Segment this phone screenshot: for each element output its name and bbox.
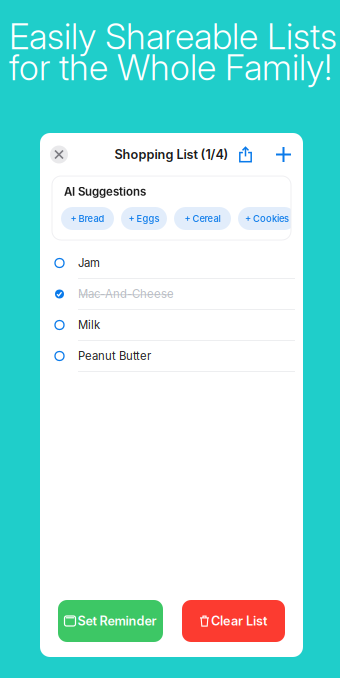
staticText: Jam [78, 256, 100, 270]
staticText: Set Reminder [77, 613, 156, 629]
staticText: for the Whole Family! [9, 46, 332, 89]
staticText: Milk [78, 318, 100, 332]
staticText: Clear List [211, 613, 267, 629]
staticText: Mac-And-Cheese [78, 287, 174, 301]
button[interactable]: Peanut Butter [40, 341, 303, 372]
button[interactable]: Add item [276, 147, 291, 162]
button[interactable]: + Cookies [238, 207, 296, 230]
staticText: + Cereal [184, 213, 220, 224]
button[interactable]: Jam [40, 248, 303, 279]
staticText: Easily Shareable Lists [9, 15, 337, 58]
button[interactable]: Share [239, 146, 252, 162]
button[interactable]: + Cereal [174, 207, 231, 230]
staticText: AI Suggestions [64, 185, 146, 198]
staticText: + Bread [70, 213, 104, 224]
button[interactable]: Set Reminder [58, 600, 163, 642]
button[interactable]: Clear List [182, 600, 285, 642]
button[interactable]: Milk [40, 310, 303, 341]
staticText: Peanut Butter [78, 349, 151, 363]
button[interactable]: Mac-And-Cheese [40, 279, 303, 310]
staticText: + Cookies [245, 213, 289, 224]
staticText: + Eggs [128, 213, 159, 224]
button[interactable]: Close [50, 145, 68, 163]
button[interactable]: + Eggs [121, 207, 167, 230]
staticText: Shopping List (1/4) [114, 147, 228, 162]
button[interactable]: + Bread [61, 207, 114, 230]
